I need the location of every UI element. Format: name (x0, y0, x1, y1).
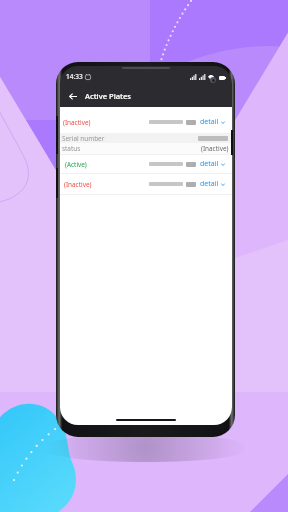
button[interactable]: Back (65, 88, 81, 104)
staticText: detail (200, 179, 219, 189)
staticText: (Inactive) (63, 118, 91, 127)
staticText: Active Plates (85, 91, 131, 101)
staticText: detail (200, 159, 219, 169)
staticText: (Inactive) (201, 144, 229, 153)
button[interactable]: (Active) (60, 155, 232, 173)
staticText: 14:33 (66, 72, 83, 81)
staticText: (Inactive) (64, 180, 92, 189)
staticText: status (62, 144, 81, 153)
staticText: detail (200, 117, 219, 127)
button[interactable]: (Inactive) (60, 111, 232, 133)
staticText: Serial number (62, 134, 105, 143)
button[interactable]: (Inactive) (60, 174, 232, 194)
staticText: (Active) (65, 160, 87, 169)
